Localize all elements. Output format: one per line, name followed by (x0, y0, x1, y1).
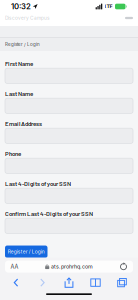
button[interactable]: Register / Login (0, 37, 45, 51)
staticText: First Name (5, 60, 33, 67)
button[interactable]: Reload page (114, 261, 133, 273)
button[interactable]: Bookmarks (84, 275, 106, 290)
staticText: Discovery Campus (5, 15, 50, 21)
button[interactable]: Back (5, 275, 27, 290)
staticText: Email Address (5, 120, 42, 127)
button[interactable]: Forward (31, 275, 53, 290)
staticText: Register / Login (8, 249, 45, 255)
button[interactable]: AA (5, 261, 24, 273)
staticText: Last Name (5, 90, 33, 97)
staticText: Confirm Last 4-Digits of your SSN (5, 210, 93, 217)
staticText: Register / Login (5, 41, 40, 47)
button[interactable]: Tabs (111, 275, 133, 290)
staticText: Last 4-Digits of your SSN (5, 180, 71, 187)
button[interactable]: Share (58, 275, 80, 290)
staticText: ats.prohrhq.com (51, 263, 93, 270)
staticText: 10:32 (11, 2, 31, 11)
staticText: Phone (5, 150, 21, 157)
staticText: AA (10, 263, 18, 270)
staticText: LTE (105, 3, 113, 10)
button[interactable]: Register / Login (5, 245, 47, 258)
